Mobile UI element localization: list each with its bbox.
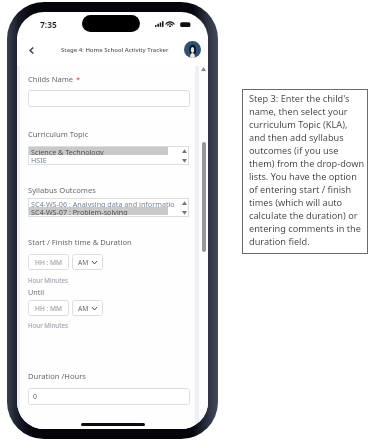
staticText: Syllabus Outcomes — [28, 185, 96, 195]
staticText: Duration /Hours — [28, 371, 86, 381]
staticText: * — [76, 74, 81, 84]
staticText: Curriculum Topic — [28, 129, 89, 139]
button[interactable]: Back — [21, 40, 41, 60]
staticText: Step 3: Enter the child's name, then sel… — [249, 92, 365, 248]
staticText: SC4-WS-06 : Analysing data and informati… — [31, 199, 175, 207]
staticText: Childs Name — [28, 74, 74, 84]
button[interactable]: AM — [72, 254, 103, 270]
button[interactable]: 0 — [28, 388, 190, 405]
button[interactable]: Profile — [184, 41, 201, 58]
staticText: Start / Finish time & Duration — [28, 237, 132, 247]
staticText: 0 — [33, 392, 38, 402]
staticText: Hour Minutes — [28, 276, 68, 284]
staticText: Until — [28, 287, 44, 297]
staticText: Science & Technology — [31, 147, 104, 155]
button[interactable]: AM — [72, 300, 103, 316]
staticText: HSIE — [31, 155, 47, 163]
staticText: AM — [78, 304, 89, 313]
staticText: HH : MM — [35, 304, 62, 313]
button[interactable]: HH : MM — [28, 300, 69, 316]
staticText: AM — [78, 258, 89, 267]
staticText: Stage 4: Home School Activity Tracker — [61, 46, 169, 54]
staticText: Hour Minutes — [28, 321, 68, 329]
staticText: HH : MM — [35, 258, 62, 267]
button[interactable]: SC4-WS-06 : Analysing data and informati… — [28, 198, 189, 217]
staticText: SC4-WS-07 : Problem-solving — [31, 207, 128, 215]
staticText: 7:35 — [40, 19, 57, 30]
button[interactable] — [28, 90, 190, 107]
button[interactable]: Science & Technology — [28, 146, 189, 165]
button[interactable]: HH : MM — [28, 254, 69, 270]
